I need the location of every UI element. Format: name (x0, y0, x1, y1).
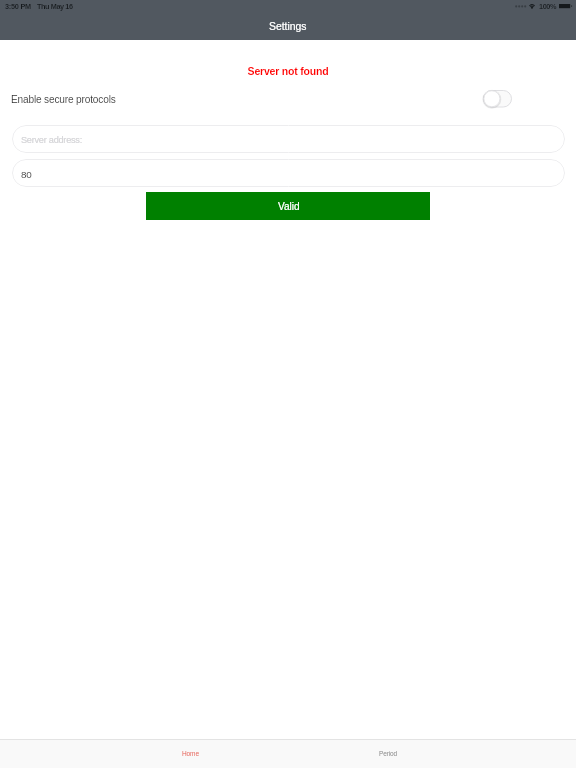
button[interactable]: Period (289, 740, 487, 768)
button[interactable]: 80 (12, 159, 565, 187)
staticText: Thu May 16 (37, 2, 73, 10)
button[interactable]: Server address: (12, 125, 565, 153)
staticText: Home (182, 750, 199, 757)
staticText: Server address: (21, 135, 82, 145)
button[interactable]: Home (91, 740, 289, 768)
staticText: 80 (21, 169, 32, 180)
staticText: Valid (278, 201, 300, 212)
button[interactable]: Valid (146, 192, 430, 220)
staticText: Server not found (0, 65, 576, 77)
staticText: Enable secure protocols (11, 94, 116, 105)
button[interactable]: Enable secure protocols (483, 88, 515, 110)
staticText: Settings (269, 21, 307, 33)
staticText: 3:50 PM (5, 2, 31, 10)
staticText: 100% (539, 2, 557, 10)
button[interactable]: Enable secure protocols (0, 88, 576, 110)
staticText: Period (379, 750, 397, 757)
